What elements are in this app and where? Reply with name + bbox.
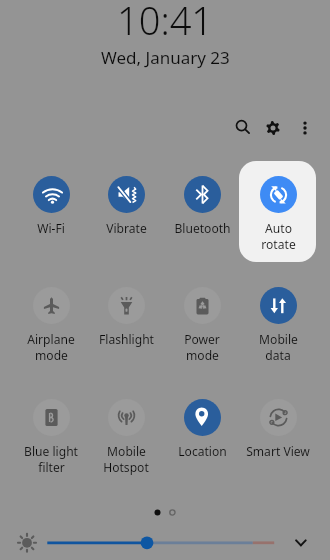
staticText: Blue light (24, 443, 78, 459)
staticText: Auto (265, 220, 292, 236)
staticText: Hotspot (103, 459, 149, 475)
staticText: Bluetooth (174, 220, 231, 236)
button[interactable]: Vibrate (88, 176, 164, 242)
button[interactable]: Auto (240, 176, 316, 242)
staticText: Flashlight (99, 331, 154, 347)
button[interactable]: Search (227, 112, 257, 142)
staticText: Power (184, 331, 220, 347)
button[interactable]: Flashlight (88, 287, 164, 353)
staticText: Smart View (246, 443, 310, 459)
staticText: Wi-Fi (37, 220, 65, 236)
staticText: Vibrate (106, 220, 147, 236)
button[interactable]: Mobile (240, 287, 316, 353)
button[interactable]: Airplane (13, 287, 89, 353)
button[interactable]: Location (164, 399, 240, 465)
button[interactable]: Bluetooth (164, 176, 240, 242)
staticText: Wed, January 23 (101, 46, 230, 69)
staticText: Airplane (27, 331, 75, 347)
button[interactable]: Brightness (0, 526, 330, 560)
button[interactable]: Smart View (240, 399, 316, 465)
staticText: rotate (261, 236, 296, 252)
button[interactable]: More options (290, 113, 320, 143)
staticText: 10:41 (117, 0, 214, 46)
staticText: mode (186, 347, 219, 363)
button[interactable]: Power (164, 287, 240, 353)
button[interactable]: Blue light (13, 399, 89, 465)
staticText: Location (178, 443, 227, 459)
staticText: Mobile (107, 443, 146, 459)
button[interactable]: Wi-Fi (13, 176, 89, 242)
staticText: Mobile (259, 331, 298, 347)
button[interactable]: Settings (258, 113, 288, 143)
button[interactable]: Mobile (88, 399, 164, 465)
staticText: data (265, 347, 291, 363)
staticText: filter (38, 459, 65, 475)
staticText: mode (35, 347, 68, 363)
